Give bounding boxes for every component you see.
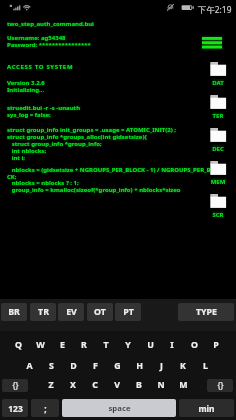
button[interactable]: J <box>150 359 172 373</box>
staticText: SCR <box>206 211 230 219</box>
staticText: N <box>157 379 165 391</box>
button[interactable]: MEM <box>206 161 230 187</box>
button[interactable]: V <box>106 378 128 392</box>
button[interactable]: 123 <box>2 399 28 417</box>
button[interactable]: M <box>172 378 194 392</box>
staticText: DAT <box>206 78 230 86</box>
button[interactable]: DAT <box>206 62 230 88</box>
staticText: L <box>203 360 208 372</box>
staticText: DEC <box>206 145 230 153</box>
button[interactable]: F <box>84 359 106 373</box>
button[interactable]: PT <box>115 303 141 321</box>
button[interactable]: X <box>62 378 84 392</box>
staticText: int nblocks; <box>7 147 47 155</box>
button[interactable]: H <box>128 359 150 373</box>
staticText: A <box>26 360 33 372</box>
button[interactable]: K <box>172 359 194 373</box>
button[interactable]: I <box>161 338 183 352</box>
button[interactable]: space <box>62 399 176 417</box>
staticText: S <box>49 360 54 372</box>
staticText: two_step_auth_command.bui <box>7 20 94 28</box>
staticText: B <box>136 379 142 391</box>
staticText: min <box>198 403 215 414</box>
button[interactable]: D <box>62 359 84 373</box>
staticText: ACCESS TO SYSTEM <box>7 63 74 71</box>
button[interactable]: SCR <box>206 194 230 220</box>
button[interactable]: G <box>106 359 128 373</box>
button[interactable]: EV <box>58 303 84 321</box>
staticText: TER <box>206 112 230 120</box>
staticText: U <box>147 339 154 351</box>
button[interactable]: W <box>29 338 51 352</box>
staticText: Version 3.2.6 <box>7 79 45 87</box>
staticText: O <box>191 339 198 351</box>
button[interactable]: B <box>128 378 150 392</box>
staticText: 下午2:19 <box>198 4 232 15</box>
button[interactable]: E <box>51 338 73 352</box>
staticText: struedit.bui -r -s -unauth <box>7 104 81 112</box>
button[interactable]: {} <box>2 379 28 392</box>
button[interactable]: BR <box>1 303 27 321</box>
staticText: TR <box>38 306 49 318</box>
staticText: group_info = kmalloc(sizeof(*group_info)… <box>7 186 181 194</box>
button[interactable]: Menu <box>200 34 224 52</box>
staticText: CK; <box>7 173 17 181</box>
button[interactable]: C <box>84 378 106 392</box>
staticText: C <box>92 379 98 391</box>
staticText: Y <box>125 339 131 351</box>
staticText: struct group_info *group_info; <box>7 140 102 148</box>
staticText: space <box>108 403 131 414</box>
staticText: V <box>114 379 120 391</box>
staticText: W <box>36 339 45 351</box>
staticText: ACCESS TO SYSTEM <box>7 63 74 71</box>
button[interactable]: Y <box>117 338 139 352</box>
staticText: K <box>180 360 186 372</box>
button[interactable]: Q <box>7 338 29 352</box>
staticText: {} <box>217 380 224 391</box>
staticText: TYPE <box>196 306 217 318</box>
staticText: {} <box>12 380 19 391</box>
staticText: Password: **************** <box>7 41 91 49</box>
button[interactable]: U <box>139 338 161 352</box>
staticText: EV <box>66 306 77 318</box>
button[interactable]: S <box>40 359 62 373</box>
staticText: J <box>160 360 163 372</box>
staticText: int i; <box>7 154 26 162</box>
button[interactable]: min <box>179 399 234 417</box>
button[interactable]: ; <box>31 399 59 417</box>
button[interactable]: T <box>95 338 117 352</box>
staticText: struedit.bui -r -s -unauth <box>7 104 81 112</box>
button[interactable]: O <box>183 338 205 352</box>
button[interactable]: N <box>150 378 172 392</box>
staticText: DAT <box>206 79 230 87</box>
staticText: struct group_info *groups_alloc(int gids… <box>7 133 147 141</box>
button[interactable]: L <box>194 359 216 373</box>
staticText: F <box>93 360 98 372</box>
staticText: struct group_info *group_info; <box>7 140 102 148</box>
staticText: Version 3.2.6 <box>7 79 45 87</box>
button[interactable]: A <box>18 359 40 373</box>
staticText: sys_log = false; <box>7 111 51 119</box>
staticText: DEC <box>206 144 230 152</box>
staticText: sys_log = false; <box>7 111 51 119</box>
staticText: CK; <box>7 173 17 181</box>
button[interactable]: DEC <box>206 128 230 154</box>
staticText: nblocks = nblocks ? : 1; <box>7 179 79 187</box>
staticText: D <box>70 360 77 372</box>
staticText: X <box>70 379 76 391</box>
staticText: G <box>114 360 121 372</box>
button[interactable]: P <box>205 338 227 352</box>
staticText: P <box>213 339 219 351</box>
button[interactable]: R <box>73 338 95 352</box>
button[interactable]: TR <box>30 303 56 321</box>
staticText: Password: **************** <box>7 41 91 49</box>
button[interactable]: OT <box>87 303 113 321</box>
staticText: BR <box>8 306 20 318</box>
button[interactable]: Z <box>40 378 62 392</box>
button[interactable]: TYPE <box>178 303 234 321</box>
staticText: nblocks = nblocks ? : 1; <box>7 179 79 187</box>
staticText: nblocks = (gidsetsize + NGROUPS_PER_BLOC… <box>7 166 219 174</box>
button[interactable]: TER <box>206 95 230 121</box>
button[interactable]: {} <box>207 379 233 392</box>
staticText: MEM <box>206 177 230 185</box>
